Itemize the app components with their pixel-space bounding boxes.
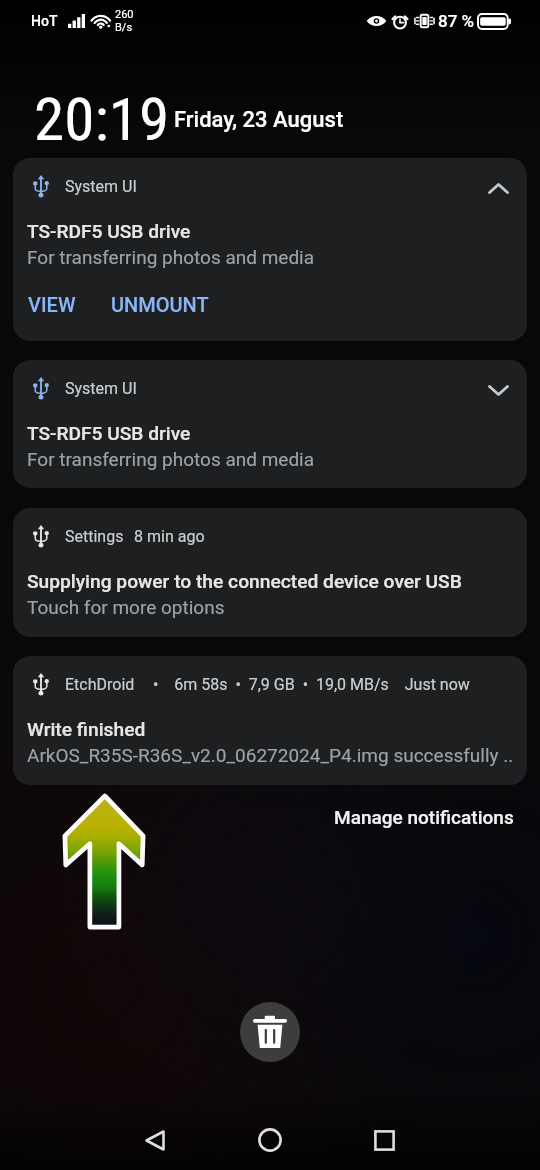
staticText: Manage notifications [334,806,514,828]
staticText: EtchDroid [65,675,135,694]
button[interactable] [13,508,527,637]
button[interactable]: VIEW [14,287,90,322]
button[interactable]: Recent apps [363,1119,405,1161]
staticText: Touch for more options [27,596,225,618]
button[interactable]: Manage notifications [330,802,518,832]
staticText: 87 % [438,11,475,31]
staticText: System UI [65,177,137,196]
staticText: B/s [115,21,133,34]
staticText: System UI [65,379,137,398]
staticText: 20:19 [34,84,170,154]
staticText: Friday, 23 August [174,107,344,133]
staticText: For transferring photos and media [27,246,315,268]
button[interactable]: Collapse [482,172,514,204]
staticText: Write finished [27,718,146,741]
button[interactable] [13,656,527,785]
button[interactable]: Back [134,1119,176,1161]
staticText: HoT [31,13,58,29]
staticText: Settings [65,527,124,546]
staticText: For transferring photos and media [27,448,315,470]
staticText: UNMOUNT [111,293,209,316]
button[interactable]: Clear all notifications [240,1002,300,1062]
staticText: TS-RDF5 USB drive [27,220,191,243]
staticText: 8 min ago [134,527,205,546]
staticText: VIEW [28,293,76,316]
staticText: 260 [115,8,134,21]
staticText: • 6m 58s • 7,9 GB • 19,0 MB/s Just now [145,675,470,694]
button[interactable]: Home [249,1119,291,1161]
button[interactable] [13,158,527,341]
staticText: Supplying power to the connected device … [27,570,462,593]
button[interactable]: UNMOUNT [97,287,223,322]
staticText: TS-RDF5 USB drive [27,422,191,445]
button[interactable]: Expand [482,374,514,406]
staticText: ArkOS_R35S-R36S_v2.0_06272024_P4.img suc… [27,744,514,766]
button[interactable] [13,360,527,488]
